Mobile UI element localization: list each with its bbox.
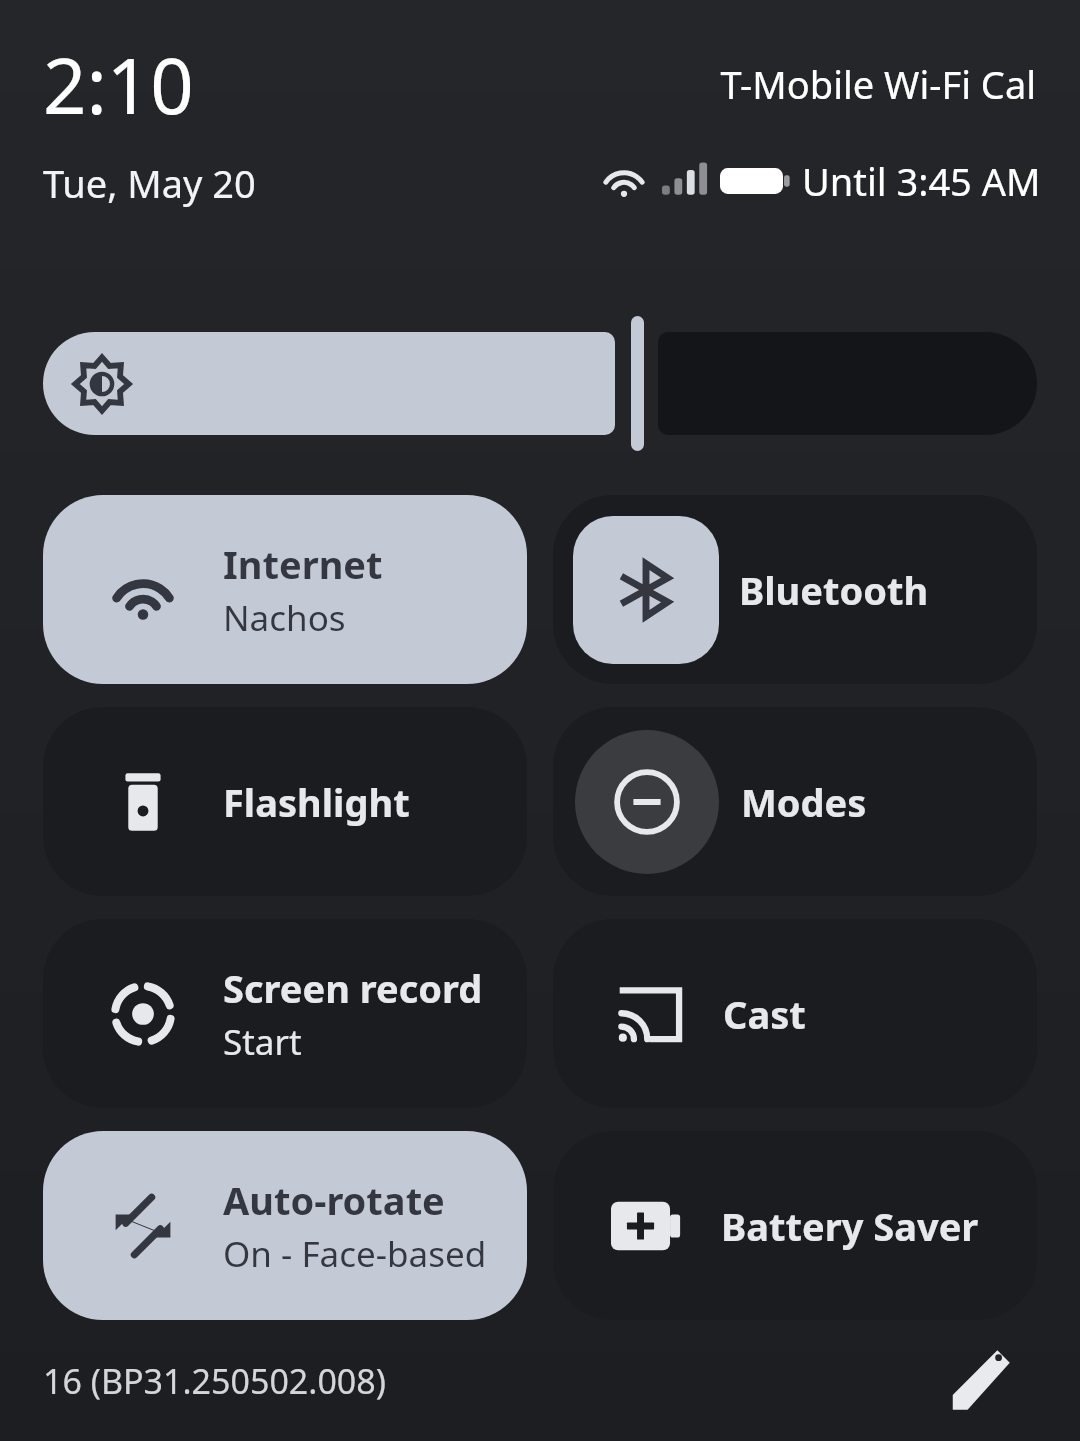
button[interactable]: Modes	[553, 707, 1037, 896]
staticText: Cast	[723, 988, 806, 1040]
staticText: On - Face-based	[223, 1230, 487, 1278]
staticText: Battery Saver	[721, 1200, 979, 1252]
staticText: Screen record	[223, 962, 483, 1014]
staticText: 16 (BP31.250502.008)	[43, 1358, 386, 1404]
staticText: Flashlight	[223, 776, 410, 828]
staticText: Until 3:45 AM	[802, 155, 1041, 207]
staticText: Modes	[741, 776, 867, 828]
button[interactable]: Cast	[553, 919, 1037, 1108]
staticText: 2:10	[43, 33, 194, 137]
staticText: Internet	[223, 538, 383, 590]
button[interactable]: Bluetooth	[553, 495, 1037, 684]
staticText: Nachos	[223, 594, 346, 642]
button[interactable]: Edit	[930, 1330, 1030, 1430]
button[interactable]: Brightness	[43, 332, 615, 435]
staticText: T-Mobile Wi-Fi Cal	[0, 58, 1036, 110]
staticText: Tue, May 20	[43, 157, 256, 209]
button[interactable]: Battery Saver	[553, 1131, 1037, 1320]
staticText: Bluetooth	[739, 564, 929, 616]
button[interactable]: Auto-rotate	[43, 1131, 527, 1320]
button[interactable]: Flashlight	[43, 707, 527, 896]
button[interactable]: Screen record	[43, 919, 527, 1108]
button[interactable]: Internet	[43, 495, 527, 684]
staticText: Start	[223, 1018, 302, 1066]
staticText: Auto-rotate	[223, 1174, 445, 1226]
